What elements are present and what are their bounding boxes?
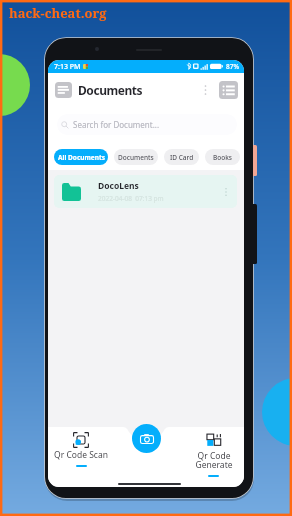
button[interactable]: List view [219,81,238,99]
button[interactable]: Scan with camera [132,424,161,453]
button[interactable]: DocoLens [54,175,237,208]
button[interactable]: Search for Document... [61,114,231,135]
staticText: hack-cheat.org [9,4,107,22]
staticText: Qr Code Scan [54,449,108,461]
button[interactable]: ID Card [164,149,199,165]
button[interactable]: Books [205,149,240,165]
staticText: All Documents [58,153,105,162]
staticText: 2022-04-08 07:13 pm [98,194,164,203]
staticText: Search for Document... [73,119,160,130]
button[interactable]: More options [201,82,210,98]
button[interactable]: Item options [222,185,230,199]
button[interactable]: Documents [55,82,72,98]
button[interactable]: Documents [114,149,158,165]
staticText: 7:13 PM [54,62,81,72]
button[interactable]: Qr Code Scan [51,432,111,467]
staticText: Documents [78,82,143,98]
button[interactable]: Qr Code Generate [183,433,244,477]
button[interactable]: All Documents [54,149,108,165]
staticText: Books [213,153,232,162]
staticText: Qr Code Generate [195,450,233,471]
staticText: 87% [226,62,239,71]
staticText: Documents [118,153,154,162]
staticText: DocoLens [98,180,139,192]
staticText: ID Card [170,153,194,162]
